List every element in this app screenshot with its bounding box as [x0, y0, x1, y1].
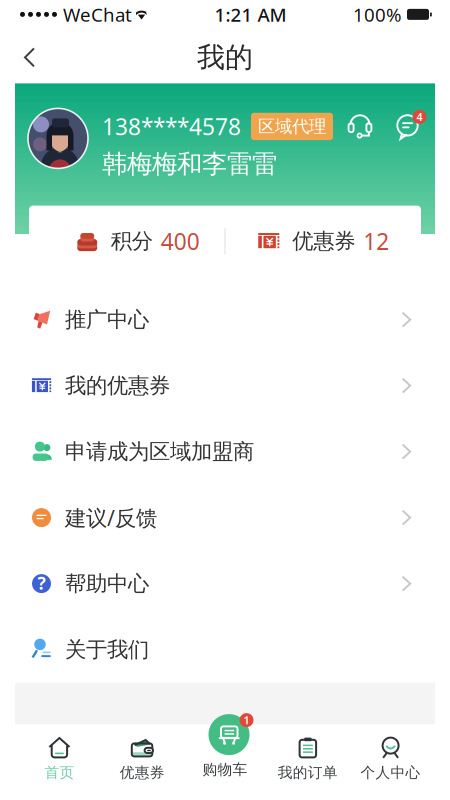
button[interactable]: 优惠券 [225, 206, 421, 277]
staticText: 我的优惠券 [65, 372, 170, 399]
staticText: 400 [161, 226, 200, 256]
staticText: 1 [243, 713, 249, 727]
staticText: 138****4578 [102, 111, 241, 141]
button[interactable]: 客服 [347, 111, 374, 138]
staticText: 首页 [44, 764, 74, 782]
staticText: 100% [353, 2, 402, 27]
staticText: 区域代理 [258, 116, 326, 137]
button[interactable]: 申请成为区域加盟商 [0, 419, 450, 485]
button[interactable]: 推广中心 [0, 287, 450, 353]
staticText: 积分 [111, 228, 153, 254]
button[interactable]: 关于我们 [0, 617, 450, 683]
button[interactable]: 1 [184, 714, 266, 792]
button[interactable]: 首页 [18, 725, 101, 800]
staticText: 我的订单 [278, 764, 338, 782]
button[interactable]: 积分 [29, 206, 224, 277]
staticText: 优惠券 [292, 228, 355, 254]
button[interactable]: 消息 [392, 111, 424, 142]
staticText: 购物车 [202, 761, 247, 779]
staticText: 帮助中心 [65, 570, 149, 597]
staticText: 推广中心 [65, 306, 149, 333]
button[interactable]: 优惠券 [101, 725, 184, 800]
button[interactable]: ? [0, 551, 450, 617]
staticText: 建议/反馈 [65, 503, 157, 532]
staticText: 我的 [197, 40, 253, 75]
staticText: 关于我们 [65, 636, 149, 663]
staticText: 4 [416, 110, 422, 124]
button[interactable]: Back [20, 42, 50, 72]
staticText: 1:21 AM [214, 2, 286, 27]
button[interactable]: 我的订单 [266, 725, 349, 800]
button[interactable]: 个人中心 [349, 725, 432, 800]
staticText: WeChat [63, 2, 132, 27]
staticText: 12 [363, 226, 389, 256]
button[interactable]: 建议/反馈 [0, 485, 450, 551]
staticText: 个人中心 [361, 764, 421, 782]
staticText: 申请成为区域加盟商 [65, 438, 254, 465]
staticText: 优惠券 [120, 764, 165, 782]
staticText: ? [37, 572, 45, 595]
staticText: 韩梅梅和李雷雷 [102, 148, 277, 180]
button[interactable]: 我的优惠券 [0, 353, 450, 419]
